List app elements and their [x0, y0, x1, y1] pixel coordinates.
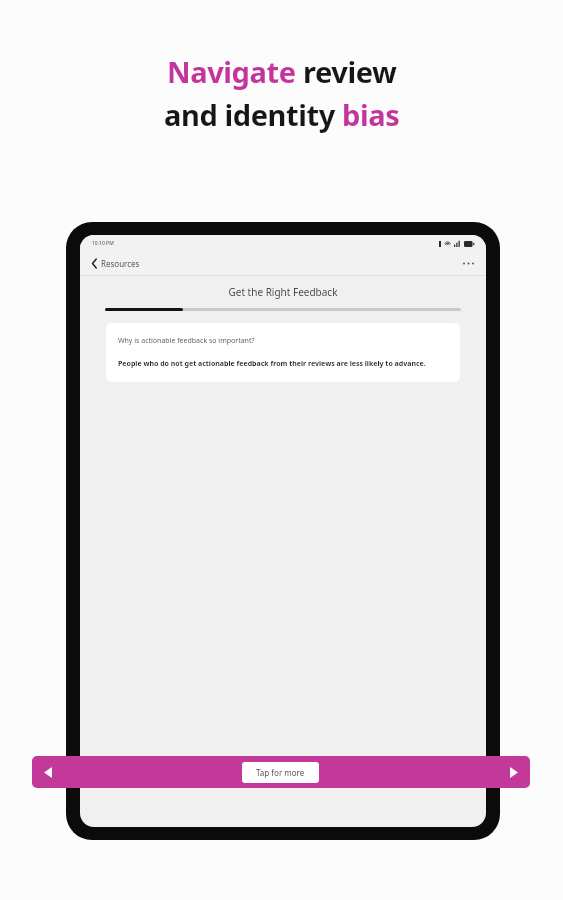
staticText: Resources: [101, 258, 140, 269]
staticText: People who do not get actionable feedbac…: [118, 359, 426, 369]
button[interactable]: Resources: [88, 255, 144, 272]
staticText: and identity: [164, 95, 342, 134]
staticText: 10:10 PM: [92, 240, 114, 247]
staticText: Get the Right Feedback: [80, 285, 486, 299]
staticText: Tap for more: [256, 767, 305, 778]
button[interactable]: Previous: [38, 761, 58, 784]
button[interactable]: Tap for more: [242, 762, 319, 783]
button[interactable]: More options: [459, 256, 478, 271]
button[interactable]: Next: [504, 761, 524, 784]
button[interactable]: Why is actionable feedback so important?: [106, 323, 460, 382]
staticText: Why is actionable feedback so important?: [118, 336, 255, 346]
staticText: review: [303, 52, 397, 91]
staticText: Navigate: [167, 52, 303, 91]
staticText: bias: [342, 95, 400, 134]
